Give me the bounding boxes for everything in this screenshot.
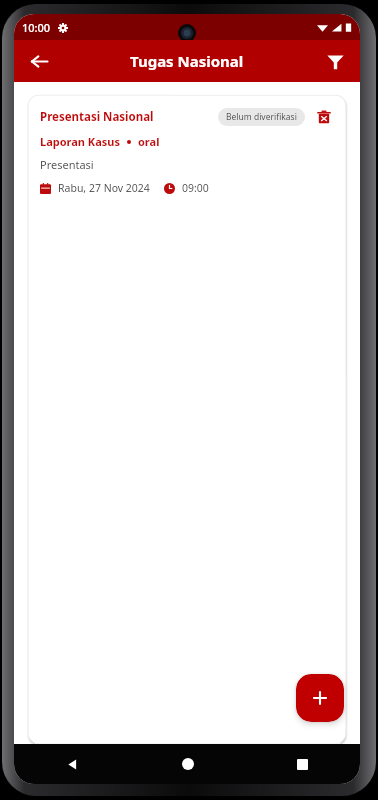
staticText: Rabu, 27 Nov 2024 xyxy=(58,181,150,195)
button[interactable]: Delete xyxy=(314,107,334,127)
staticText: oral xyxy=(138,134,160,149)
staticText: Presentasi xyxy=(40,157,94,172)
button[interactable]: Presentasi Nasional xyxy=(28,95,346,744)
staticText: Belum diverifikasi xyxy=(226,111,297,123)
button[interactable]: Home xyxy=(130,744,245,784)
staticText: Laporan Kasus xyxy=(40,134,120,149)
button[interactable]: Back xyxy=(22,44,56,78)
button[interactable]: Belum diverifikasi xyxy=(218,108,305,126)
staticText: Tugas Nasional xyxy=(130,51,244,71)
button[interactable]: Recents xyxy=(245,744,360,784)
button[interactable]: Back xyxy=(14,744,130,784)
staticText: 10:00 xyxy=(22,20,51,35)
button[interactable]: Add xyxy=(296,674,344,722)
staticText: 09:00 xyxy=(182,181,209,195)
staticText: Presentasi Nasional xyxy=(40,109,154,125)
button[interactable]: Filter xyxy=(318,44,352,78)
